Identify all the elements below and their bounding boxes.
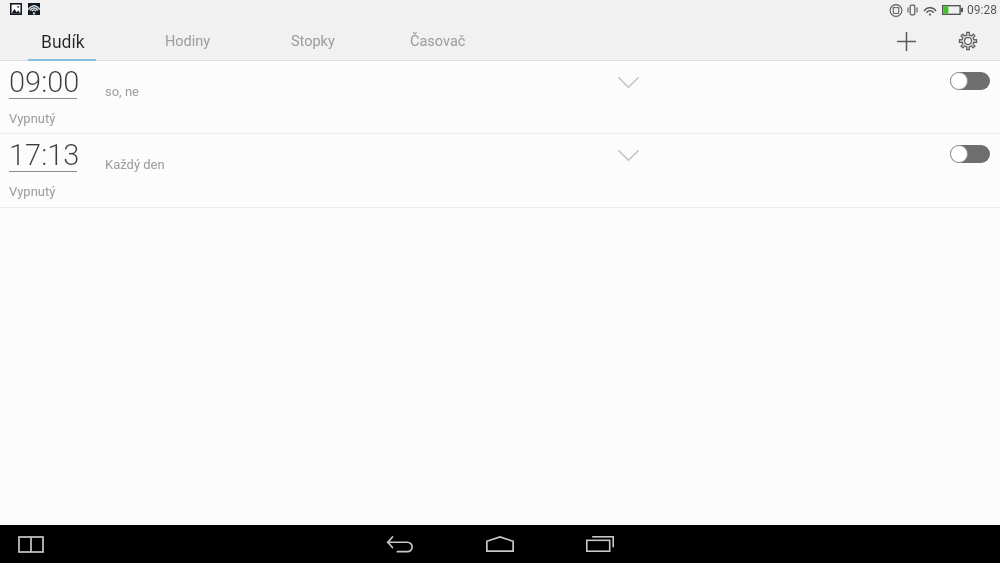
button[interactable]: Toggle alarm	[948, 142, 992, 166]
button[interactable]: Back	[372, 530, 428, 558]
button[interactable]: Hodiny	[125, 21, 250, 61]
staticText: Budík	[41, 32, 85, 53]
button[interactable]: Home	[472, 530, 528, 558]
staticText: 17:13	[9, 138, 80, 172]
staticText: 09:28	[967, 3, 997, 17]
staticText: so, ne	[105, 84, 139, 99]
button[interactable]: Časovač	[375, 21, 500, 61]
button[interactable]: Expand alarm	[612, 139, 644, 171]
button[interactable]: Toggle alarm	[948, 69, 992, 93]
button[interactable]: Recents	[572, 530, 628, 558]
button[interactable]: Expand alarm	[612, 66, 644, 98]
staticText: Vypnutý	[9, 111, 56, 126]
button[interactable]: Stopky	[250, 21, 375, 61]
button[interactable]: 09:00	[0, 61, 1000, 133]
staticText: Každý den	[105, 157, 165, 172]
button[interactable]: Budík	[0, 21, 125, 61]
button[interactable]: Settings	[948, 21, 988, 61]
staticText: Časovač	[410, 33, 466, 50]
staticText: Vypnutý	[9, 184, 56, 199]
button[interactable]: Multi window	[15, 530, 47, 558]
button[interactable]: 17:13	[0, 134, 1000, 207]
staticText: Hodiny	[165, 33, 211, 50]
button[interactable]: Add alarm	[886, 21, 926, 61]
staticText: Stopky	[291, 33, 335, 50]
staticText: 09:00	[9, 65, 80, 99]
